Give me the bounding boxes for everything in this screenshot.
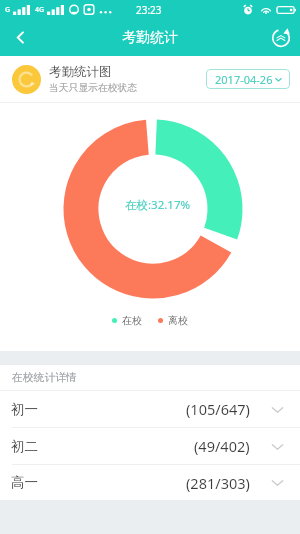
button[interactable]: 2017-04-26 <box>206 69 290 89</box>
staticText: 在校:32.17% <box>125 197 191 213</box>
button[interactable]: 高一 <box>0 465 300 500</box>
staticText: 在校统计详情 <box>12 371 77 385</box>
staticText: (49/402) <box>194 436 250 456</box>
staticText: 初二 <box>11 438 38 455</box>
staticText: G <box>5 5 11 15</box>
staticText: 2017-04-26 <box>215 72 273 87</box>
staticText: 当天只显示在校状态 <box>49 82 138 94</box>
staticText: 考勤统计 <box>122 29 178 47</box>
staticText: 高一 <box>11 474 38 491</box>
staticText: (105/647) <box>186 399 250 419</box>
staticText: 考勤统计图 <box>49 64 112 80</box>
staticText: 在校 <box>122 314 142 327</box>
staticText: 离校 <box>168 314 188 327</box>
staticText: 4G <box>35 5 45 15</box>
staticText: 23:23 <box>136 3 162 17</box>
button[interactable]: Back <box>0 19 40 56</box>
button[interactable]: Refresh <box>262 19 300 56</box>
button[interactable]: 初一 <box>0 391 300 427</box>
staticText: (281/303) <box>186 473 250 493</box>
button[interactable]: 初二 <box>0 428 300 464</box>
staticText: 初一 <box>11 401 38 418</box>
